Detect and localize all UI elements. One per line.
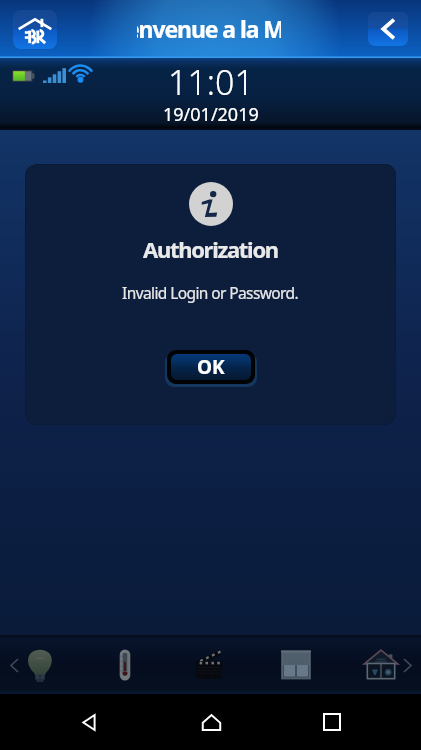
button[interactable]: Next (400, 654, 414, 676)
button[interactable]: Home (13, 10, 57, 49)
button[interactable]: Lights (18, 643, 62, 687)
staticText: Bienvenue a la Maison (137, 13, 281, 42)
staticText: OK (197, 354, 225, 380)
staticText: Authorization (143, 234, 278, 264)
button[interactable]: Recents (311, 701, 353, 743)
button[interactable]: House (359, 643, 403, 687)
button[interactable]: Blinds (274, 643, 318, 687)
staticText: 19/01/2019 (163, 102, 259, 127)
button[interactable]: Home (190, 701, 232, 743)
button[interactable]: Back (368, 12, 408, 46)
staticText: Invalid Login or Password. (122, 282, 299, 303)
button[interactable]: Back (68, 701, 110, 743)
button[interactable]: Temperature (103, 643, 147, 687)
staticText: 11:01 (168, 59, 254, 105)
button[interactable]: OK (171, 354, 251, 380)
button[interactable]: Previous (7, 654, 21, 676)
button[interactable]: Media (189, 643, 233, 687)
